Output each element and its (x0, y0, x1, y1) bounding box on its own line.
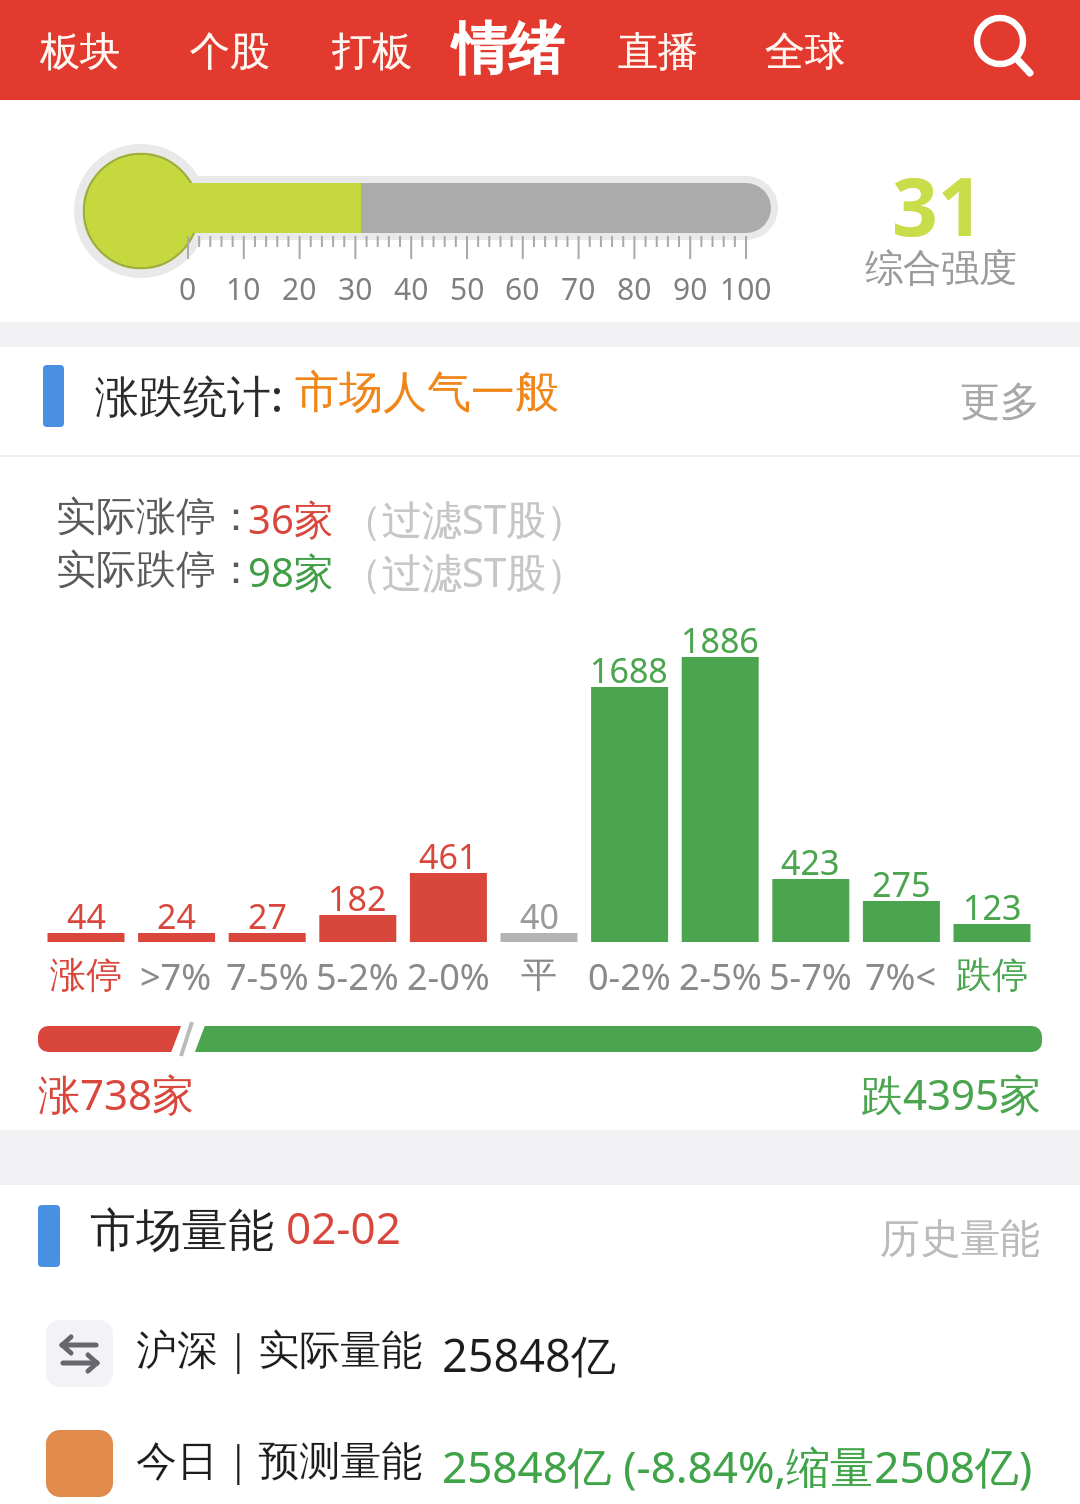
staticText: 综合强度 (865, 244, 1017, 292)
staticText: 25848亿 (-8.84%,缩量2508亿) (442, 1436, 1033, 1496)
staticText: 1886 (681, 617, 759, 663)
staticText: 70 (561, 268, 596, 309)
staticText: 461 (419, 833, 478, 879)
staticText: 2-0% (407, 952, 490, 1001)
staticText: 市场量能 (90, 1197, 286, 1260)
button[interactable]: 历史量能 (880, 1213, 1040, 1263)
staticText: 情绪 (452, 14, 564, 85)
staticText: 98家 (248, 544, 334, 599)
staticText: 1688 (590, 647, 668, 693)
staticText: 市场人气一般 (295, 365, 559, 420)
staticText: 31 (892, 150, 984, 259)
staticText: 40 (394, 268, 429, 309)
staticText: 7%< (865, 952, 937, 1001)
staticText: 90 (673, 268, 708, 309)
staticText: 24 (157, 893, 196, 939)
button[interactable]: 打板 (332, 26, 412, 76)
staticText: 沪深｜实际量能 (136, 1325, 423, 1377)
staticText: （过滤ST股） (342, 544, 587, 599)
staticText: 10 (226, 268, 261, 309)
staticText: 跌停 (956, 952, 1028, 997)
staticText: 打板 (332, 26, 412, 76)
button[interactable]: 沪深｜实际量能 (136, 1325, 423, 1377)
staticText: 423 (781, 839, 840, 885)
button[interactable]: 全球 (765, 26, 845, 76)
button[interactable] (46, 1320, 113, 1387)
staticText: 7-5% (226, 952, 309, 1001)
staticText: 02-02 (286, 1197, 401, 1257)
button[interactable]: 今日｜预测量能 (136, 1436, 423, 1488)
staticText: 历史量能 (880, 1213, 1040, 1263)
staticText: 更多 (960, 376, 1040, 426)
button[interactable]: 更多 (960, 376, 1040, 426)
staticText: 实际涨停： (56, 491, 256, 541)
staticText: 全球 (765, 26, 845, 76)
staticText: >7% (140, 952, 212, 1001)
staticText: 100 (720, 268, 772, 309)
staticText: 5-7% (769, 952, 852, 1001)
staticText: 0-2% (588, 952, 671, 1001)
staticText: 个股 (190, 26, 270, 76)
button[interactable]: 直播 (618, 26, 698, 76)
staticText: 30 (338, 268, 373, 309)
button[interactable] (960, 5, 1050, 95)
staticText: 2-5% (679, 952, 762, 1001)
staticText: 275 (872, 861, 931, 907)
staticText: 50 (450, 268, 485, 309)
staticText: 板块 (40, 26, 120, 76)
staticText: 60 (505, 268, 540, 309)
staticText: 36家 (248, 491, 334, 546)
staticText: 0 (179, 268, 197, 309)
staticText: 涨738家 (38, 1065, 195, 1122)
staticText: 40 (520, 893, 559, 939)
staticText: 80 (617, 268, 652, 309)
button[interactable]: 情绪 (452, 14, 564, 85)
staticText: 跌4395家 (861, 1065, 1042, 1122)
staticText: 实际跌停： (56, 544, 256, 594)
staticText: 123 (963, 884, 1022, 930)
staticText: 今日｜预测量能 (136, 1436, 423, 1488)
staticText: 涨跌统计: (95, 365, 295, 425)
staticText: 5-2% (316, 952, 399, 1001)
button[interactable] (46, 1430, 113, 1497)
staticText: 182 (328, 875, 387, 921)
staticText: 涨停 (50, 952, 122, 997)
button[interactable]: 个股 (190, 26, 270, 76)
staticText: 25848亿 (442, 1324, 616, 1385)
staticText: 27 (248, 893, 287, 939)
staticText: 直播 (618, 26, 698, 76)
staticText: 20 (282, 268, 317, 309)
staticText: 平 (521, 952, 557, 997)
staticText: （过滤ST股） (342, 491, 587, 546)
button[interactable]: 板块 (40, 26, 120, 76)
staticText: 44 (67, 893, 106, 939)
